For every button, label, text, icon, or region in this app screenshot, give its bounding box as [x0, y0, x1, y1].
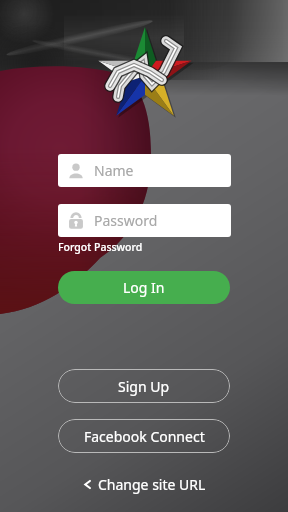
- button[interactable]: Facebook Connect: [58, 419, 230, 453]
- staticText: Sign Up: [118, 377, 170, 396]
- staticText: Password: [94, 211, 158, 230]
- staticText: Change site URL: [98, 475, 206, 494]
- button[interactable]: Forgot Password: [58, 240, 143, 254]
- button[interactable]: Sign Up: [58, 369, 230, 403]
- staticText: Facebook Connect: [84, 427, 205, 446]
- staticText: Log In: [123, 278, 165, 297]
- staticText: Forgot Password: [58, 240, 143, 254]
- staticText: Name: [94, 161, 134, 180]
- button[interactable]: Name: [58, 154, 231, 187]
- button[interactable]: Password: [58, 204, 231, 237]
- button[interactable]: Change site URL: [0, 471, 288, 497]
- button[interactable]: Log In: [58, 271, 230, 304]
